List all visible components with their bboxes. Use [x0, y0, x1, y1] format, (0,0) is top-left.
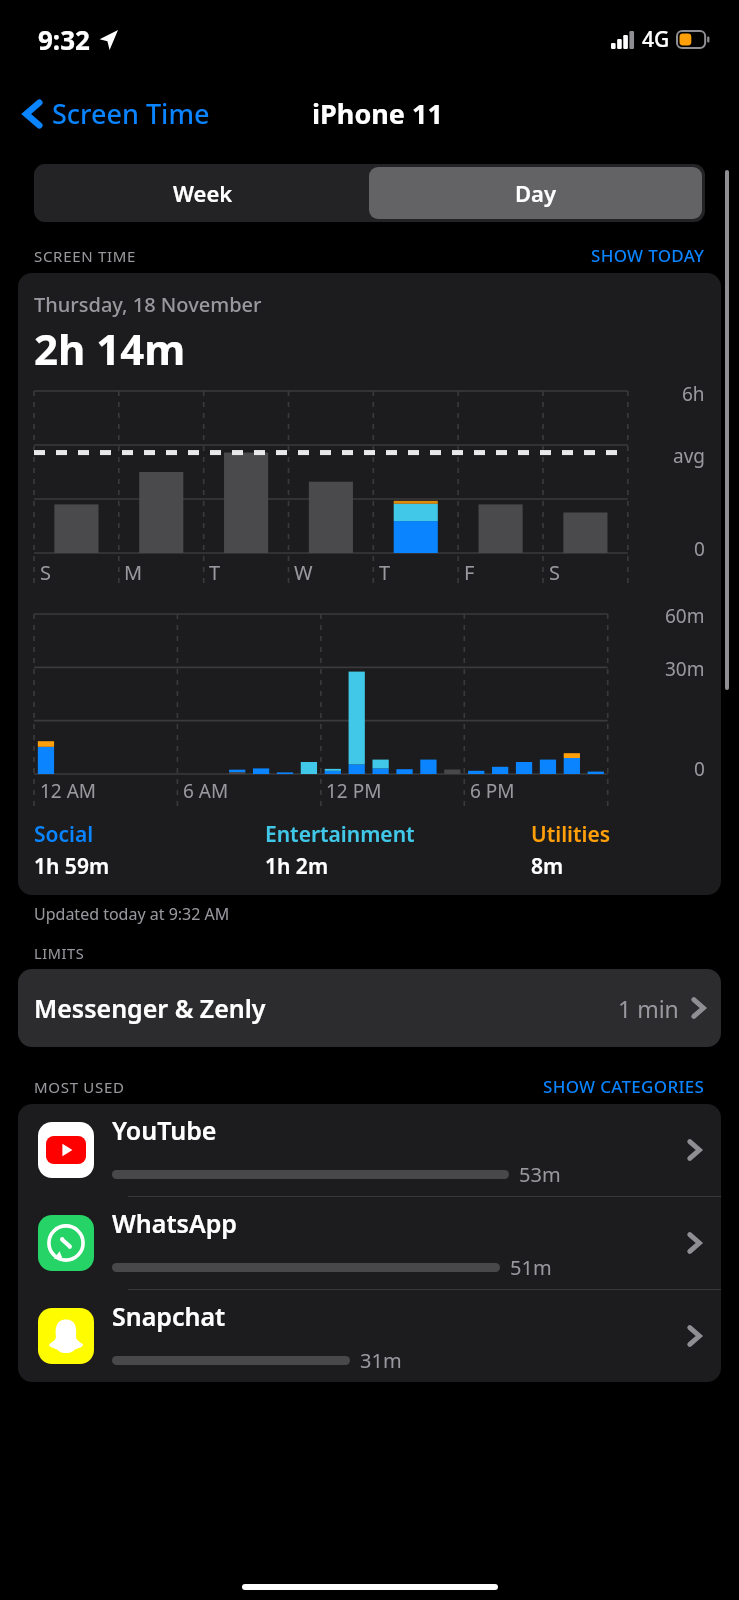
- staticText: Entertainment: [265, 820, 415, 849]
- staticText: LIMITS: [34, 943, 85, 963]
- staticText: 2h 14m: [34, 320, 186, 377]
- staticText: 6 AM: [183, 778, 229, 804]
- staticText: Day: [515, 178, 557, 208]
- button[interactable]: Week: [37, 167, 369, 219]
- staticText: 53m: [519, 1161, 561, 1188]
- button[interactable]: YouTube: [18, 1104, 721, 1196]
- staticText: 0: [694, 756, 705, 782]
- staticText: 1h 59m: [34, 852, 110, 881]
- button[interactable]: Snapchat: [18, 1290, 721, 1382]
- staticText: M: [124, 559, 143, 586]
- button[interactable]: WhatsApp: [18, 1197, 721, 1289]
- staticText: Utilities: [531, 820, 611, 849]
- staticText: 12 AM: [40, 778, 97, 804]
- staticText: S: [40, 559, 51, 586]
- staticText: 1 min: [618, 993, 679, 1024]
- staticText: Week: [173, 178, 233, 208]
- staticText: Updated today at 9:32 AM: [34, 903, 230, 925]
- staticText: WhatsApp: [112, 1206, 237, 1240]
- staticText: Messenger & Zenly: [34, 991, 618, 1025]
- staticText: Thursday, 18 November: [34, 291, 262, 318]
- staticText: iPhone 11: [312, 95, 443, 132]
- staticText: MOST USED: [34, 1077, 125, 1097]
- button[interactable]: Day: [369, 167, 702, 219]
- staticText: SCREEN TIME: [34, 246, 137, 266]
- staticText: Social: [34, 820, 94, 849]
- staticText: 30m: [665, 656, 705, 682]
- staticText: F: [464, 559, 475, 586]
- staticText: Snapchat: [112, 1299, 226, 1333]
- staticText: 51m: [510, 1254, 552, 1281]
- staticText: 8m: [531, 852, 564, 881]
- staticText: SHOW TODAY: [591, 244, 705, 267]
- button[interactable]: SHOW TODAY: [591, 244, 705, 267]
- staticText: 12 PM: [326, 778, 382, 804]
- button[interactable]: Messenger & Zenly: [18, 969, 721, 1047]
- staticText: YouTube: [112, 1113, 217, 1147]
- staticText: 6h: [682, 381, 705, 407]
- button[interactable]: SHOW CATEGORIES: [543, 1075, 705, 1098]
- staticText: 60m: [665, 603, 705, 629]
- staticText: SHOW CATEGORIES: [543, 1075, 705, 1098]
- staticText: 1h 2m: [265, 852, 329, 881]
- staticText: T: [209, 559, 221, 586]
- staticText: 6 PM: [470, 778, 515, 804]
- staticText: 31m: [360, 1347, 402, 1374]
- staticText: S: [549, 559, 560, 586]
- staticText: W: [294, 559, 313, 586]
- staticText: 0: [694, 536, 705, 562]
- staticText: 4G: [642, 25, 670, 54]
- staticText: T: [379, 559, 391, 586]
- staticText: 9:32: [38, 22, 90, 57]
- staticText: Screen Time: [52, 95, 210, 132]
- button[interactable]: Screen Time: [18, 91, 216, 136]
- staticText: avg: [673, 443, 705, 469]
